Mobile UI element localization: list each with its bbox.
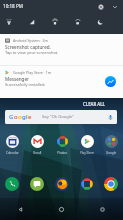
button[interactable]: Gmail bbox=[26, 135, 48, 156]
other: Photos bbox=[80, 177, 94, 191]
other: Calendar bbox=[6, 135, 19, 148]
button[interactable]: Settings bbox=[96, 2, 105, 11]
staticText: e bbox=[28, 113, 32, 121]
other: Play Store bbox=[81, 135, 94, 148]
button[interactable]: Phone bbox=[1, 177, 23, 199]
staticText: Photos bbox=[57, 151, 67, 155]
staticText: o bbox=[18, 113, 22, 121]
other: Firefox bbox=[55, 177, 69, 191]
button[interactable]: Play Store bbox=[76, 135, 98, 156]
staticText: Google Play Store · 1m bbox=[13, 70, 52, 75]
staticText: Android System · 2m bbox=[13, 38, 48, 43]
staticText: Google bbox=[106, 151, 117, 155]
button[interactable]: Quick setting bbox=[3, 16, 15, 28]
button[interactable]: Back bbox=[0, 198, 41, 220]
staticText: Calendar bbox=[6, 151, 19, 155]
staticText: Say "Ok Google" bbox=[42, 114, 74, 120]
button[interactable]: Google Play Store · 1m bbox=[0, 66, 123, 97]
other: Photos bbox=[56, 135, 69, 148]
other: Messages bbox=[30, 177, 44, 191]
button[interactable]: Photos bbox=[51, 135, 73, 156]
button[interactable]: Quick setting bbox=[49, 16, 61, 28]
staticText: Gmail bbox=[33, 151, 42, 155]
button[interactable]: G bbox=[5, 110, 117, 124]
button[interactable]: Calendar bbox=[1, 135, 23, 156]
staticText: Screenshot captured. bbox=[5, 44, 51, 50]
button[interactable]: Messages bbox=[26, 177, 48, 199]
staticText: l bbox=[26, 113, 28, 121]
staticText: Successfully installed. bbox=[5, 82, 46, 87]
staticText: G bbox=[9, 113, 14, 121]
button[interactable]: Photos bbox=[76, 177, 98, 199]
other: Gmail bbox=[31, 135, 44, 148]
staticText: o bbox=[14, 113, 18, 121]
other: Chrome bbox=[104, 177, 118, 191]
other: Google folder bbox=[105, 135, 118, 148]
button[interactable]: Quick setting bbox=[72, 16, 84, 28]
staticText: g bbox=[22, 113, 26, 121]
staticText: Messenger bbox=[5, 76, 29, 82]
button[interactable]: Recents bbox=[82, 198, 123, 220]
button[interactable]: Home bbox=[41, 198, 82, 220]
staticText: Tap to view your screenshot. bbox=[5, 50, 59, 55]
button[interactable]: Quick setting bbox=[94, 16, 106, 28]
other: Voice search bbox=[107, 114, 114, 121]
staticText: Play Store bbox=[80, 151, 94, 155]
other: Phone bbox=[5, 177, 19, 191]
staticText: 10:18 PM bbox=[3, 3, 23, 9]
button[interactable]: CLEAR ALL bbox=[83, 100, 105, 108]
button[interactable]: Android System · 2m bbox=[0, 34, 123, 65]
button[interactable]: Quick setting bbox=[26, 16, 38, 28]
staticText: CLEAR ALL bbox=[83, 101, 105, 107]
button[interactable]: Google folder bbox=[100, 135, 122, 156]
button[interactable]: Expand bbox=[110, 2, 119, 11]
button[interactable]: Firefox bbox=[51, 177, 73, 199]
button[interactable]: Chrome bbox=[100, 177, 122, 199]
